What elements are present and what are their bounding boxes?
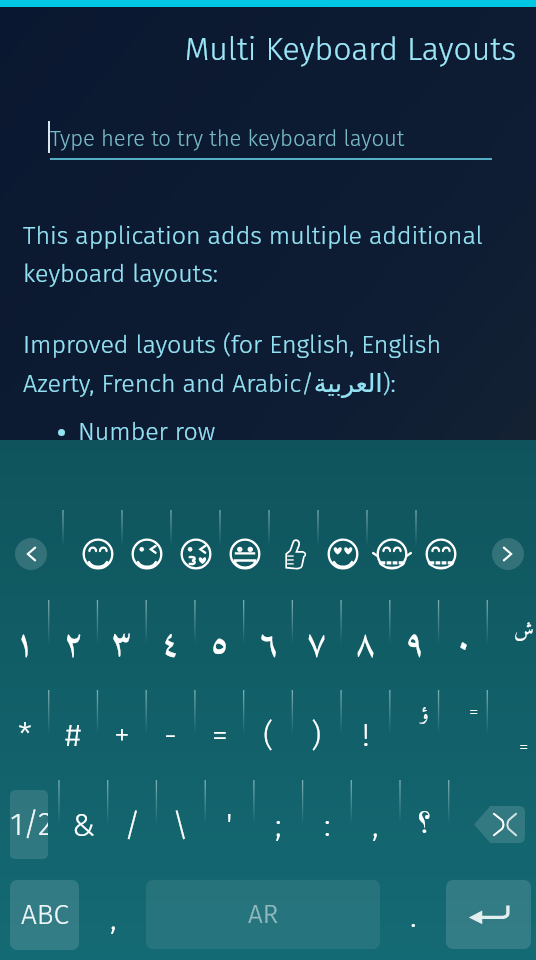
staticText: 1/2 bbox=[10, 806, 48, 843]
staticText: ٠ bbox=[453, 614, 475, 677]
staticText: = bbox=[212, 716, 228, 754]
staticText: ; bbox=[275, 806, 282, 844]
button[interactable]: - bbox=[146, 690, 195, 780]
button[interactable]: Next emoji page bbox=[492, 538, 524, 570]
button[interactable]: * bbox=[0, 690, 49, 780]
staticText: ش bbox=[514, 614, 534, 649]
staticText: ( bbox=[263, 716, 274, 754]
button[interactable]: AR bbox=[146, 880, 380, 949]
button[interactable]: = bbox=[506, 728, 536, 764]
staticText: ! bbox=[362, 716, 370, 754]
button[interactable]: ؟ bbox=[400, 780, 449, 870]
button[interactable]: ٠ bbox=[439, 600, 488, 690]
button[interactable]: = bbox=[195, 690, 244, 780]
button[interactable]: ; bbox=[254, 780, 303, 870]
staticText: + bbox=[114, 716, 130, 754]
staticText: ؤ bbox=[421, 699, 429, 732]
button[interactable]: : bbox=[303, 780, 352, 870]
staticText: # bbox=[65, 716, 82, 754]
staticText: ) bbox=[311, 716, 322, 754]
staticText: Number row bbox=[78, 417, 216, 447]
staticText: = bbox=[469, 700, 479, 723]
button[interactable]: / bbox=[108, 780, 157, 870]
button[interactable]: ١ bbox=[0, 600, 49, 690]
button[interactable]: Emoji bbox=[375, 537, 409, 571]
staticText: ٣ bbox=[111, 614, 133, 677]
button[interactable]: Emoji bbox=[228, 537, 262, 571]
staticText: / bbox=[124, 806, 141, 844]
staticText: ٦ bbox=[258, 614, 280, 677]
button[interactable]: , bbox=[88, 880, 138, 950]
button[interactable]: Emoji bbox=[424, 537, 458, 571]
button[interactable]: ( bbox=[244, 690, 293, 780]
staticText: & bbox=[72, 806, 96, 844]
button[interactable]: ٥ bbox=[195, 600, 244, 690]
button[interactable]: ٢ bbox=[49, 600, 98, 690]
staticText: , bbox=[372, 806, 379, 844]
button[interactable]: ) bbox=[292, 690, 341, 780]
staticText: Multi Keyboard Layouts bbox=[0, 30, 516, 68]
button[interactable]: ٦ bbox=[244, 600, 293, 690]
button[interactable]: Enter bbox=[446, 880, 531, 949]
button[interactable]: ٨ bbox=[341, 600, 390, 690]
button[interactable]: ؤ bbox=[407, 697, 443, 733]
staticText: : bbox=[324, 806, 331, 844]
button[interactable]: # bbox=[49, 690, 98, 780]
button[interactable]: 1/2 bbox=[10, 790, 48, 859]
staticText: This application adds multiple additiona… bbox=[23, 221, 518, 288]
button[interactable]: ٧ bbox=[292, 600, 341, 690]
staticText: AR bbox=[248, 899, 279, 930]
button[interactable]: ٣ bbox=[97, 600, 146, 690]
staticText: ٤ bbox=[160, 614, 182, 677]
button[interactable]: ABC bbox=[10, 880, 79, 950]
button[interactable]: , bbox=[351, 780, 400, 870]
staticText: ABC bbox=[21, 898, 69, 932]
staticText: ٩ bbox=[404, 614, 426, 677]
button[interactable]: \ bbox=[156, 780, 205, 870]
button[interactable]: Backspace bbox=[474, 806, 525, 843]
button[interactable]: Emoji bbox=[276, 537, 310, 571]
staticText: = bbox=[519, 735, 529, 758]
button[interactable]: + bbox=[97, 690, 146, 780]
button[interactable]: Emoji bbox=[179, 537, 213, 571]
staticText: \ bbox=[172, 806, 189, 844]
button[interactable]: Emoji bbox=[130, 537, 164, 571]
staticText: ٥ bbox=[209, 614, 231, 677]
staticText: Improved layouts (for English, English A… bbox=[23, 330, 463, 399]
staticText: ٨ bbox=[355, 614, 377, 677]
staticText: ؟ bbox=[418, 797, 432, 853]
staticText: * bbox=[18, 716, 32, 754]
staticText: ٧ bbox=[306, 614, 328, 677]
staticText: . bbox=[410, 897, 417, 935]
button[interactable]: . bbox=[388, 880, 438, 950]
staticText: ' bbox=[226, 806, 233, 844]
button[interactable]: ش bbox=[506, 613, 536, 649]
button[interactable]: ' bbox=[205, 780, 254, 870]
staticText: ٢ bbox=[63, 614, 85, 677]
button[interactable]: Emoji bbox=[81, 537, 115, 571]
button[interactable]: Emoji bbox=[326, 537, 360, 571]
staticText: Type here to try the keyboard layout bbox=[50, 125, 405, 151]
button[interactable]: ٩ bbox=[390, 600, 439, 690]
staticText: - bbox=[164, 716, 177, 754]
button[interactable]: ! bbox=[341, 690, 390, 780]
button[interactable]: Previous emoji page bbox=[15, 538, 47, 570]
button[interactable]: ٤ bbox=[146, 600, 195, 690]
staticText: ١ bbox=[14, 614, 36, 677]
staticText: , bbox=[110, 899, 117, 937]
button[interactable]: = bbox=[456, 693, 492, 729]
button[interactable]: & bbox=[59, 780, 108, 870]
